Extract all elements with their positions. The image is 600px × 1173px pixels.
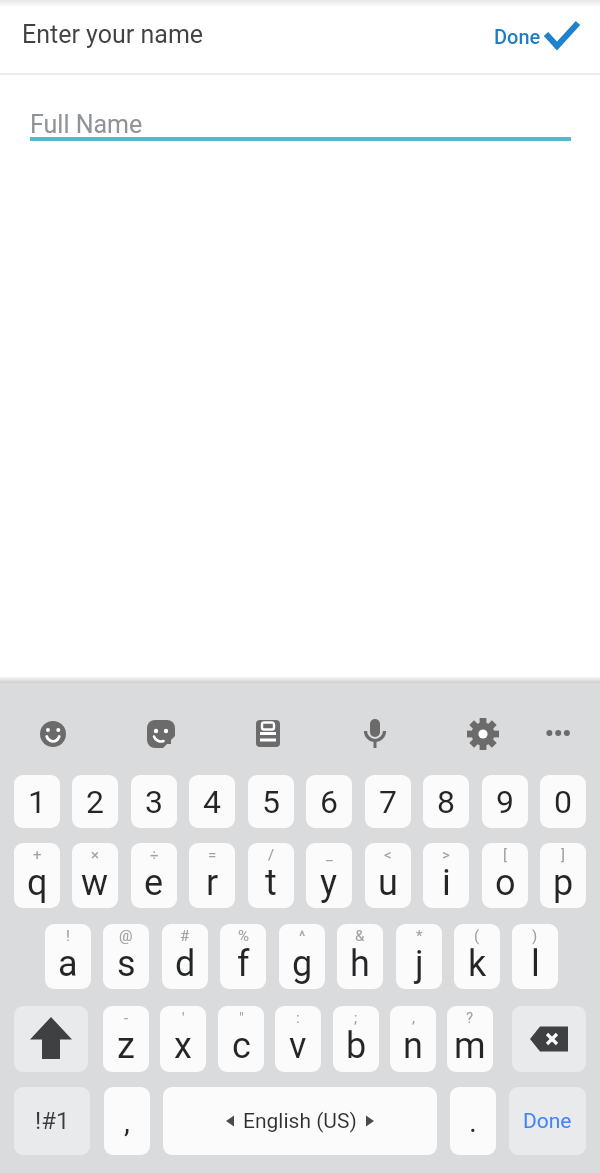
button[interactable]: ( — [454, 924, 500, 989]
staticText: ? — [466, 1009, 474, 1027]
button[interactable]: 1 — [14, 775, 60, 828]
staticText: k — [468, 943, 487, 985]
staticText: ) — [532, 927, 538, 945]
staticText: + — [33, 846, 42, 864]
button[interactable]: 7 — [365, 775, 411, 828]
staticText: n — [403, 1025, 423, 1067]
button[interactable] — [27, 708, 79, 760]
staticText: & — [355, 927, 365, 945]
staticText: g — [292, 943, 313, 985]
button[interactable]: ? — [447, 1006, 493, 1072]
button[interactable] — [349, 708, 401, 760]
staticText: : — [296, 1009, 300, 1027]
staticText: 5 — [262, 783, 280, 821]
button[interactable]: ; — [333, 1006, 379, 1072]
staticText: 6 — [320, 783, 338, 821]
staticText: p — [553, 862, 574, 904]
staticText: ; — [354, 1009, 358, 1027]
staticText: t — [265, 862, 277, 904]
staticText: ( — [474, 927, 480, 945]
staticText: !#1 — [35, 1107, 70, 1135]
staticText: % — [238, 927, 249, 945]
staticText: _ — [326, 846, 333, 864]
button[interactable]: " — [218, 1006, 264, 1072]
button[interactable]: ' — [160, 1006, 206, 1072]
button[interactable]: : — [275, 1006, 321, 1072]
button[interactable] — [243, 708, 295, 760]
staticText: ] — [561, 846, 565, 864]
button[interactable]: 8 — [423, 775, 469, 828]
staticText: . — [469, 1104, 477, 1139]
staticText: j — [415, 943, 424, 985]
button[interactable]: ^ — [279, 924, 325, 989]
button[interactable] — [512, 1006, 586, 1072]
button[interactable]: ) — [512, 924, 558, 989]
button[interactable]: * — [396, 924, 442, 989]
button[interactable]: English (US) — [163, 1087, 437, 1155]
staticText: o — [495, 862, 516, 904]
button[interactable]: Full Name — [24, 88, 577, 146]
staticText: 9 — [496, 783, 514, 821]
button[interactable]: 5 — [248, 775, 294, 828]
staticText: e — [144, 862, 164, 904]
button[interactable]: @ — [103, 924, 149, 989]
button[interactable] — [14, 1006, 88, 1072]
staticText: 3 — [145, 783, 163, 821]
button[interactable]: 4 — [189, 775, 235, 828]
staticText: 7 — [379, 783, 397, 821]
staticText: r — [206, 862, 219, 904]
staticText: " — [239, 1009, 244, 1027]
button[interactable]: - — [103, 1006, 149, 1072]
staticText: u — [378, 862, 398, 904]
button[interactable]: 9 — [482, 775, 528, 828]
button[interactable] — [135, 708, 187, 760]
button[interactable]: Done — [509, 1087, 586, 1155]
staticText: 4 — [203, 783, 221, 821]
staticText: ÷ — [150, 846, 159, 864]
button[interactable]: + — [14, 843, 60, 908]
button[interactable]: % — [220, 924, 266, 989]
staticText: Done — [523, 1109, 572, 1134]
button[interactable]: _ — [306, 843, 352, 908]
staticText: i — [442, 862, 451, 904]
staticText: Done — [494, 25, 541, 48]
button[interactable]: Done — [480, 10, 590, 62]
staticText: f — [237, 943, 250, 985]
button[interactable] — [457, 708, 509, 760]
button[interactable]: 6 — [306, 775, 352, 828]
staticText: s — [117, 943, 136, 985]
button[interactable]: ] — [540, 843, 586, 908]
staticText: # — [180, 927, 190, 945]
button[interactable]: = — [189, 843, 235, 908]
staticText: ^ — [299, 927, 306, 945]
staticText: English (US) — [243, 1109, 357, 1134]
button[interactable]: [ — [482, 843, 528, 908]
button[interactable]: > — [423, 843, 469, 908]
staticText: d — [175, 943, 196, 985]
staticText: x — [174, 1025, 192, 1067]
button[interactable]: / — [248, 843, 294, 908]
button[interactable]: < — [365, 843, 411, 908]
staticText: ! — [66, 927, 70, 945]
button[interactable]: , — [390, 1006, 436, 1072]
button[interactable]: 2 — [72, 775, 118, 828]
button[interactable]: !#1 — [14, 1087, 90, 1155]
button[interactable]: 0 — [540, 775, 586, 828]
button[interactable]: , — [104, 1087, 150, 1155]
button[interactable]: × — [72, 843, 118, 908]
staticText: m — [454, 1025, 486, 1067]
button[interactable]: # — [162, 924, 208, 989]
staticText: , — [412, 1009, 415, 1027]
button[interactable] — [532, 707, 584, 759]
staticText: - — [124, 1009, 129, 1027]
button[interactable]: 3 — [131, 775, 177, 828]
button[interactable]: ! — [45, 924, 91, 989]
staticText: 2 — [86, 783, 104, 821]
staticText: × — [91, 846, 100, 864]
button[interactable]: . — [450, 1087, 496, 1155]
button[interactable]: ÷ — [131, 843, 177, 908]
staticText: ' — [182, 1009, 185, 1027]
staticText: < — [384, 846, 392, 864]
button[interactable]: & — [337, 924, 383, 989]
staticText: @ — [119, 927, 133, 945]
